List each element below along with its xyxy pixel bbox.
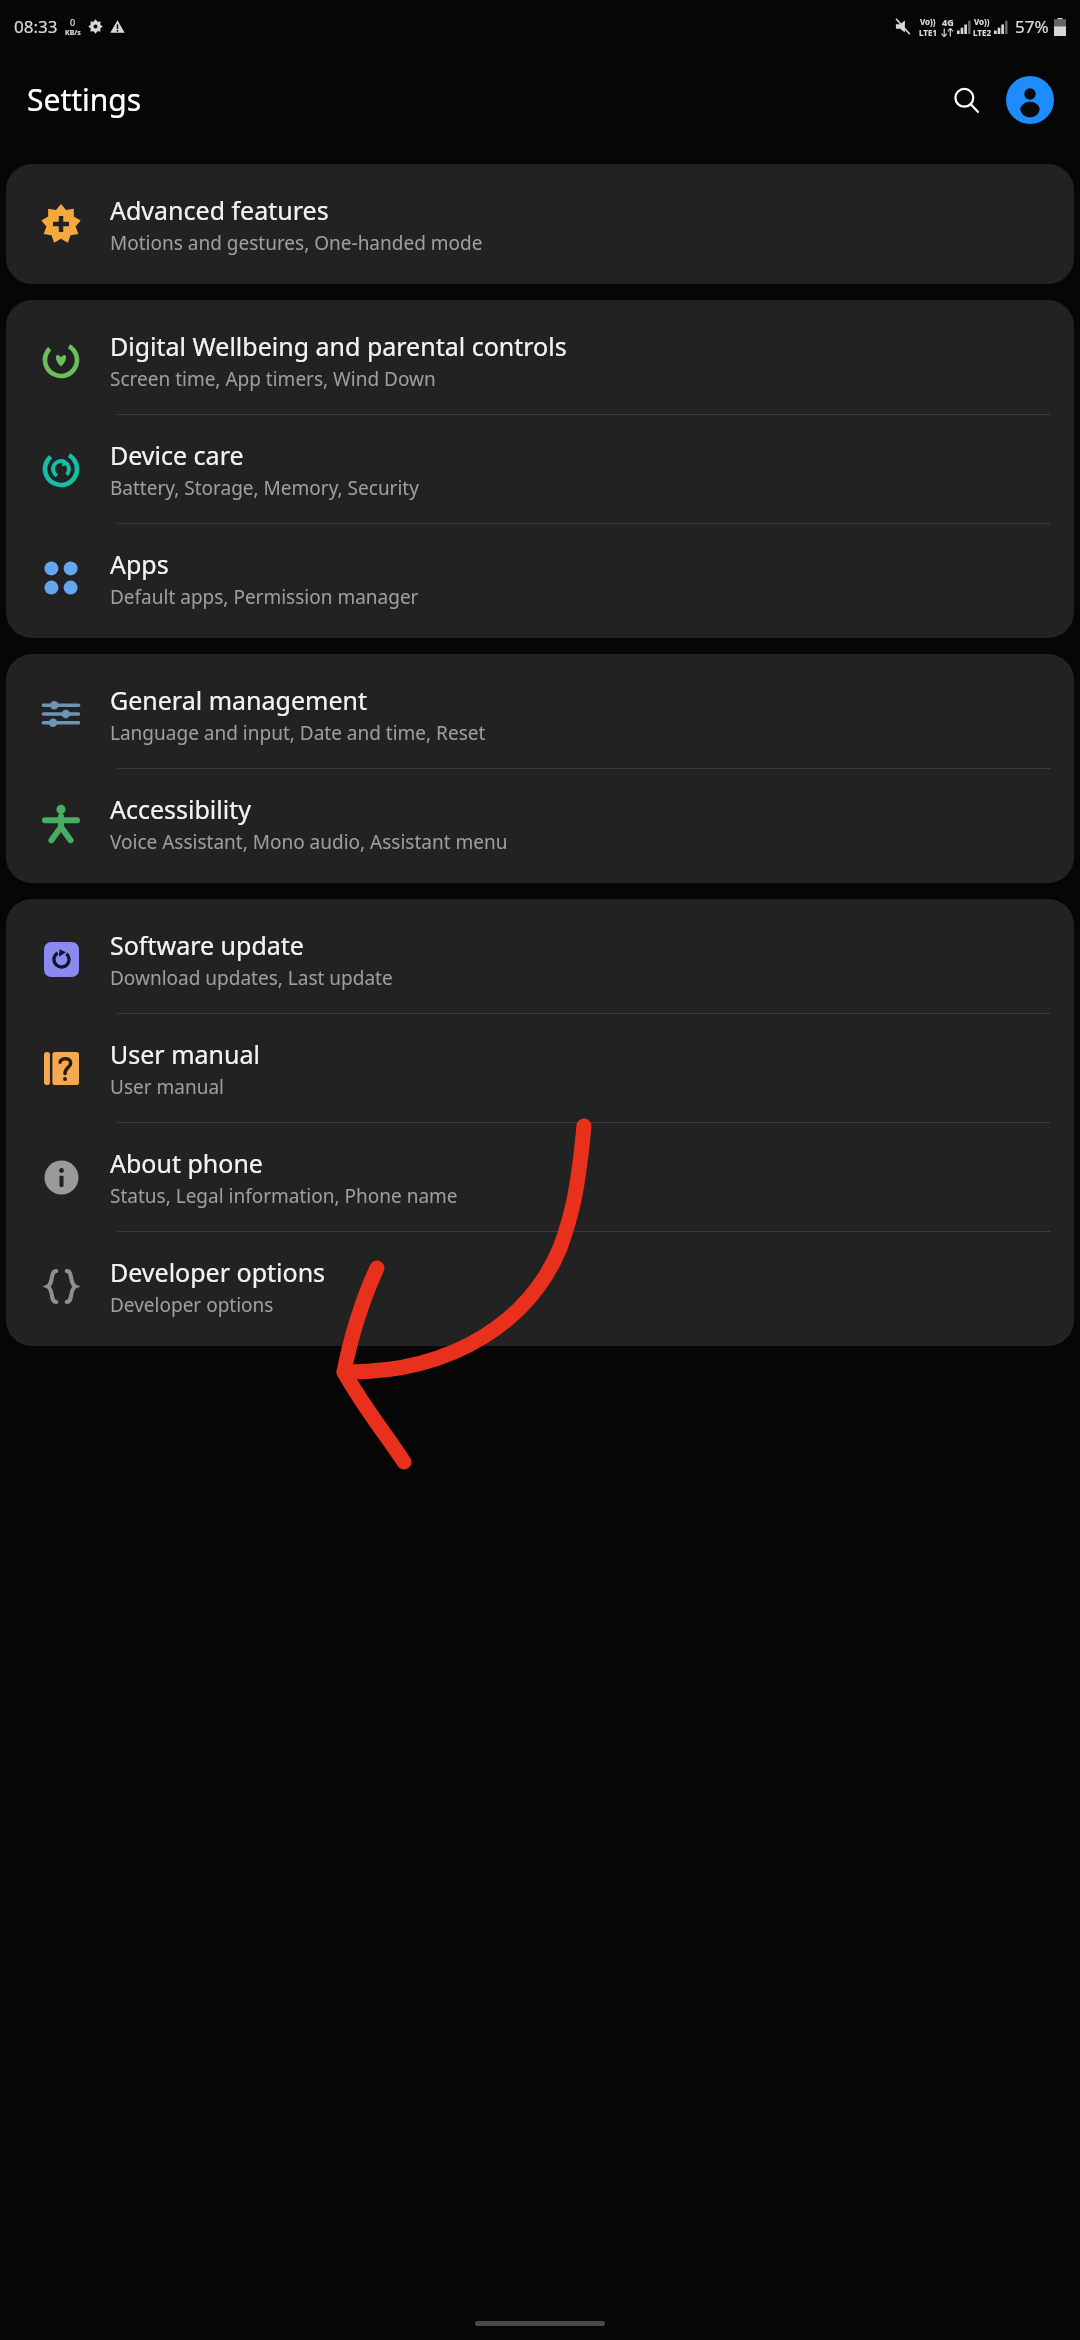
staticText: Status, Legal information, Phone name — [110, 1183, 458, 1209]
button[interactable]: User manual — [6, 1014, 1074, 1122]
staticText: Voice Assistant, Mono audio, Assistant m… — [110, 829, 508, 855]
staticText: Vo)) — [920, 16, 936, 27]
staticText: Screen time, App timers, Wind Down — [110, 366, 436, 392]
staticText: LTE2 — [973, 27, 991, 38]
staticText: Default apps, Permission manager — [110, 584, 419, 610]
staticText: About phone — [110, 1146, 263, 1180]
staticText: Settings — [27, 79, 142, 120]
button[interactable]: Software update — [6, 905, 1074, 1013]
staticText: General management — [110, 683, 367, 717]
button[interactable]: Search — [942, 76, 990, 124]
button[interactable]: Device care — [6, 415, 1074, 523]
button[interactable]: About phone — [6, 1123, 1074, 1231]
button[interactable]: Account — [1006, 76, 1054, 124]
staticText: User manual — [110, 1037, 260, 1071]
button[interactable]: Advanced features — [6, 170, 1074, 278]
staticText: Vo)) — [974, 16, 990, 27]
staticText: 0 — [70, 16, 76, 28]
staticText: Developer options — [110, 1292, 274, 1318]
button[interactable]: Accessibility — [6, 769, 1074, 877]
staticText: Download updates, Last update — [110, 965, 393, 991]
button[interactable]: General management — [6, 660, 1074, 768]
staticText: Digital Wellbeing and parental controls — [110, 329, 567, 363]
staticText: Motions and gestures, One-handed mode — [110, 230, 483, 256]
staticText: User manual — [110, 1074, 224, 1100]
staticText: Advanced features — [110, 193, 329, 227]
staticText: 57% — [1015, 15, 1049, 38]
staticText: LTE1 — [919, 27, 937, 38]
staticText: Software update — [110, 928, 304, 962]
staticText: Battery, Storage, Memory, Security — [110, 475, 419, 501]
staticText: Language and input, Date and time, Reset — [110, 720, 486, 746]
staticText: KB/s — [65, 28, 81, 38]
button[interactable]: Developer options — [6, 1232, 1074, 1340]
staticText: Apps — [110, 547, 169, 581]
staticText: Accessibility — [110, 792, 251, 826]
staticText: Developer options — [110, 1255, 326, 1289]
button[interactable]: Digital Wellbeing and parental controls — [6, 306, 1074, 414]
staticText: Device care — [110, 438, 244, 472]
button[interactable]: Apps — [6, 524, 1074, 632]
staticText: 08:33 — [14, 15, 58, 38]
staticText: 4G — [942, 16, 954, 28]
